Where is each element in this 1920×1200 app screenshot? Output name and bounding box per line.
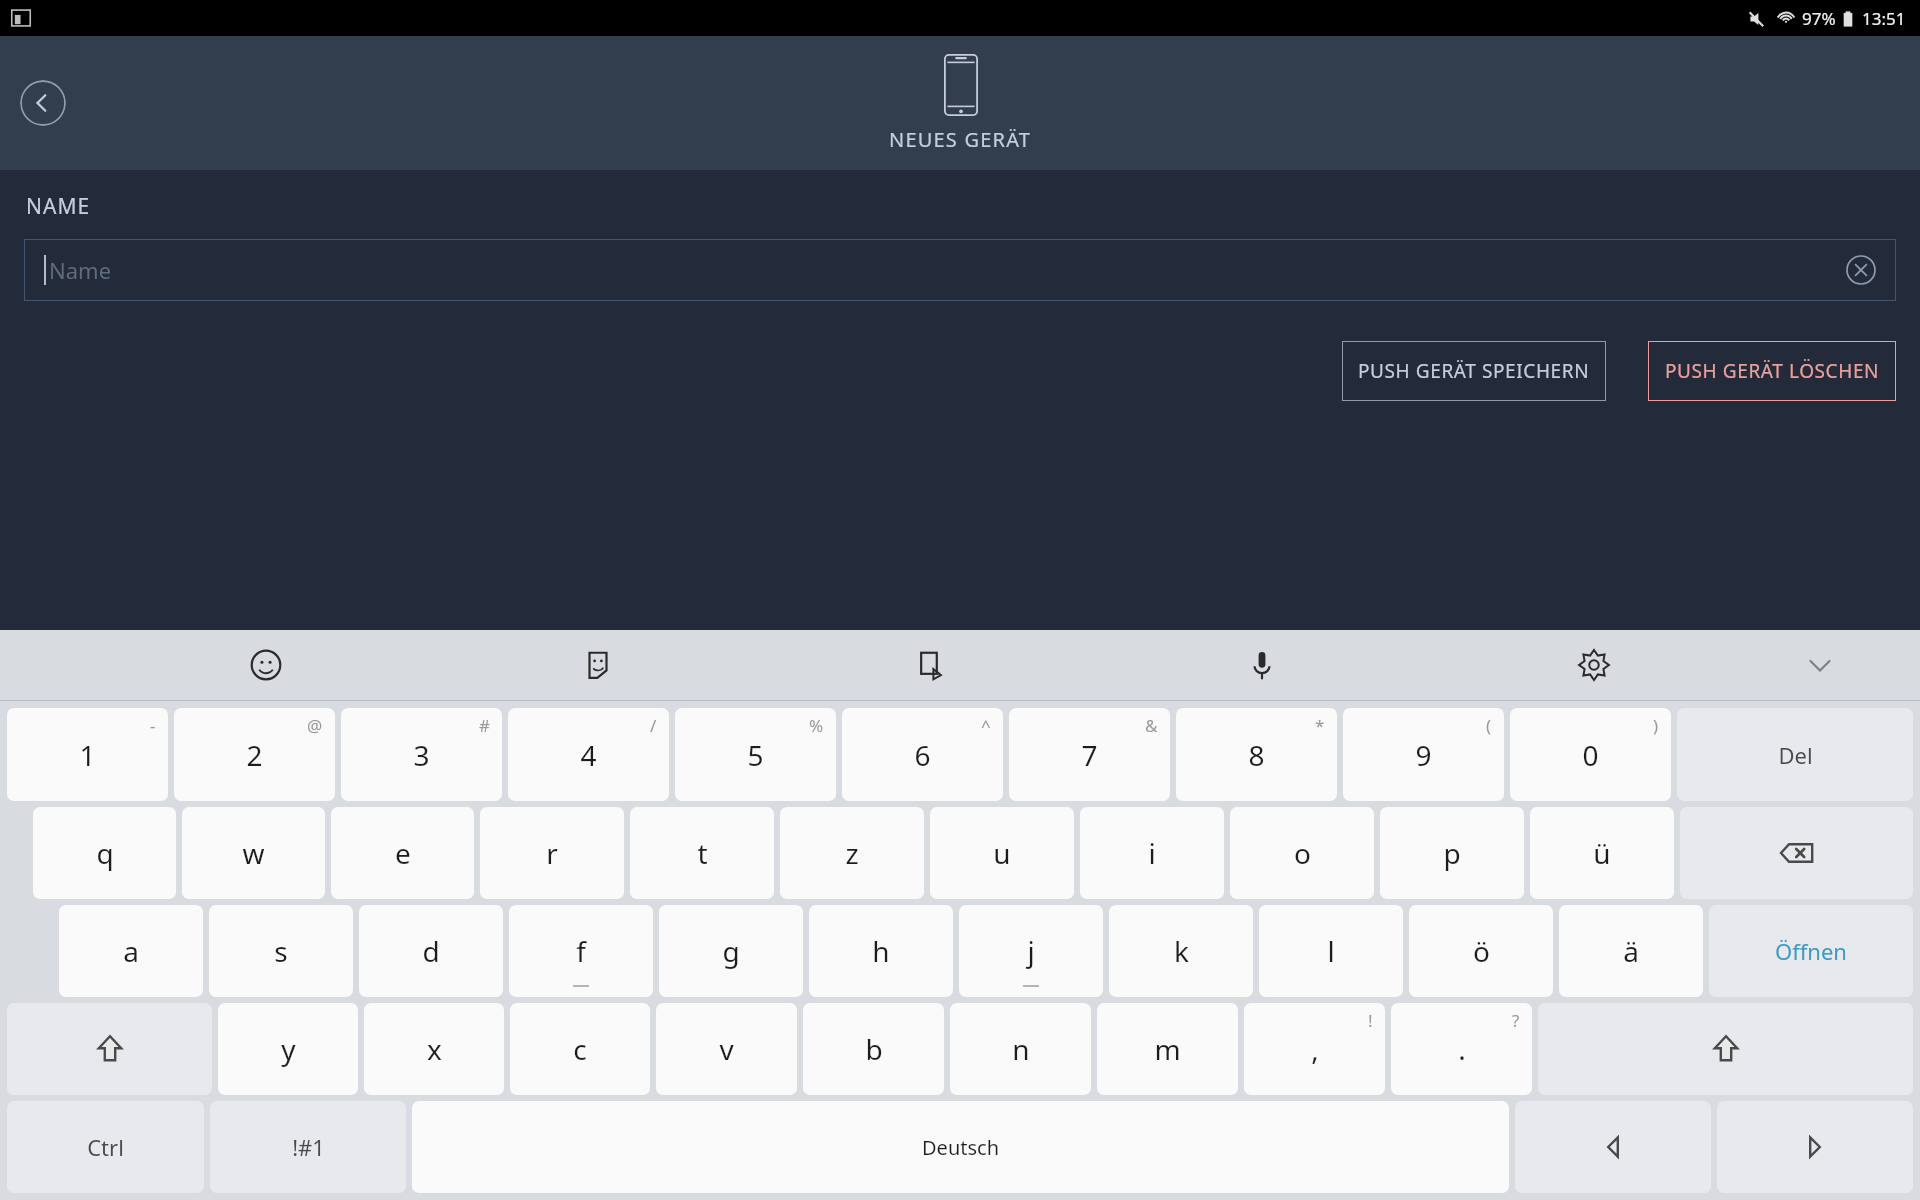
button[interactable]: p [1380, 807, 1524, 899]
button[interactable]: x [364, 1003, 504, 1095]
button[interactable]: emoji [100, 630, 432, 700]
staticText: , [1311, 1030, 1319, 1068]
staticText: q [96, 834, 114, 872]
staticText: 9 [1415, 736, 1432, 774]
button[interactable]: Ctrl [7, 1101, 204, 1193]
button[interactable]: left [1515, 1101, 1711, 1193]
button[interactable]: mic [1096, 630, 1428, 700]
button[interactable]: !#1 [210, 1101, 406, 1193]
button[interactable]: 2 [174, 708, 335, 801]
button[interactable]: s [209, 905, 353, 997]
button[interactable]: 7 [1009, 708, 1170, 801]
staticText: 1 [79, 736, 96, 774]
staticText: v [719, 1030, 734, 1068]
button[interactable]: settings [1428, 630, 1760, 700]
button[interactable]: q [33, 807, 176, 899]
button[interactable]: 4 [508, 708, 669, 801]
staticText: l [1327, 932, 1335, 970]
button[interactable]: Deutsch [412, 1101, 1509, 1193]
staticText: # [479, 714, 490, 737]
button[interactable]: z [780, 807, 924, 899]
staticText: ? [1512, 1009, 1520, 1032]
staticText: ^ [981, 714, 991, 737]
button[interactable]: t [630, 807, 774, 899]
button[interactable]: 1 [7, 708, 168, 801]
button[interactable]: v [656, 1003, 797, 1095]
button[interactable]: right [1717, 1101, 1913, 1193]
button[interactable]: ü [1530, 807, 1674, 899]
button[interactable]: 9 [1343, 708, 1504, 801]
staticText: Del [1778, 740, 1813, 770]
staticText: % [809, 714, 824, 737]
button[interactable]: e [331, 807, 474, 899]
button[interactable]: b [803, 1003, 944, 1095]
staticText: r [546, 834, 558, 872]
staticText: d [422, 932, 440, 970]
staticText: @ [307, 714, 323, 737]
button[interactable]: sticker [432, 630, 764, 700]
staticText: PUSH GERÄT SPEICHERN [1358, 358, 1590, 384]
button[interactable]: j [959, 905, 1103, 997]
button[interactable]: shift [1538, 1003, 1913, 1095]
staticText: x [427, 1030, 442, 1068]
staticText: ö [1473, 932, 1490, 970]
staticText: Name [49, 255, 112, 285]
button[interactable]: k [1109, 905, 1253, 997]
staticText: 8 [1248, 736, 1265, 774]
button[interactable]: 8 [1176, 708, 1337, 801]
staticText: h [872, 932, 890, 970]
staticText: g [722, 932, 740, 970]
button[interactable]: h [809, 905, 953, 997]
button[interactable]: o [1230, 807, 1374, 899]
button[interactable]: w [182, 807, 325, 899]
staticText: & [1145, 714, 1158, 737]
button[interactable]: backspace [1680, 807, 1913, 899]
staticText: ü [1593, 834, 1611, 872]
button[interactable]: Clear name [1842, 251, 1880, 289]
button[interactable]: ö [1409, 905, 1553, 997]
button[interactable]: a [59, 905, 203, 997]
button[interactable]: ä [1559, 905, 1703, 997]
staticText: n [1012, 1030, 1030, 1068]
button[interactable]: c [510, 1003, 650, 1095]
button[interactable]: gif [764, 630, 1096, 700]
staticText: i [1148, 834, 1156, 872]
button[interactable]: Back [20, 80, 66, 126]
button[interactable]: f [509, 905, 653, 997]
staticText: ä [1623, 932, 1639, 970]
button[interactable]: Name [24, 239, 1896, 301]
button[interactable]: PUSH GERÄT SPEICHERN [1342, 341, 1606, 401]
button[interactable]: , [1244, 1003, 1385, 1095]
staticText: a [123, 932, 139, 970]
button[interactable]: 5 [675, 708, 836, 801]
button[interactable]: Hide keyboard [1760, 630, 1880, 700]
button[interactable]: 6 [842, 708, 1003, 801]
button[interactable]: i [1080, 807, 1224, 899]
button[interactable]: r [480, 807, 624, 899]
button[interactable]: 0 [1510, 708, 1671, 801]
button[interactable]: l [1259, 905, 1403, 997]
staticText: NAME [26, 192, 91, 221]
button[interactable]: shift [7, 1003, 212, 1095]
button[interactable]: d [359, 905, 503, 997]
button[interactable]: g [659, 905, 803, 997]
staticText: y [281, 1030, 296, 1068]
staticText: 3 [413, 736, 430, 774]
button[interactable]: m [1097, 1003, 1238, 1095]
staticText: ( [1486, 714, 1492, 737]
button[interactable]: u [930, 807, 1074, 899]
staticText: p [1443, 834, 1461, 872]
button[interactable]: Del [1677, 708, 1913, 801]
staticText: 13:51 [1862, 7, 1906, 30]
staticText: - [150, 714, 156, 737]
button[interactable]: y [218, 1003, 358, 1095]
button[interactable]: 3 [341, 708, 502, 801]
button[interactable]: PUSH GERÄT LÖSCHEN [1648, 341, 1896, 401]
staticText: 5 [747, 736, 764, 774]
staticText: m [1154, 1030, 1181, 1068]
button[interactable]: n [950, 1003, 1091, 1095]
button[interactable]: Öffnen [1709, 905, 1913, 997]
button[interactable]: . [1391, 1003, 1532, 1095]
staticText: t [697, 834, 708, 872]
staticText: 0 [1582, 736, 1599, 774]
